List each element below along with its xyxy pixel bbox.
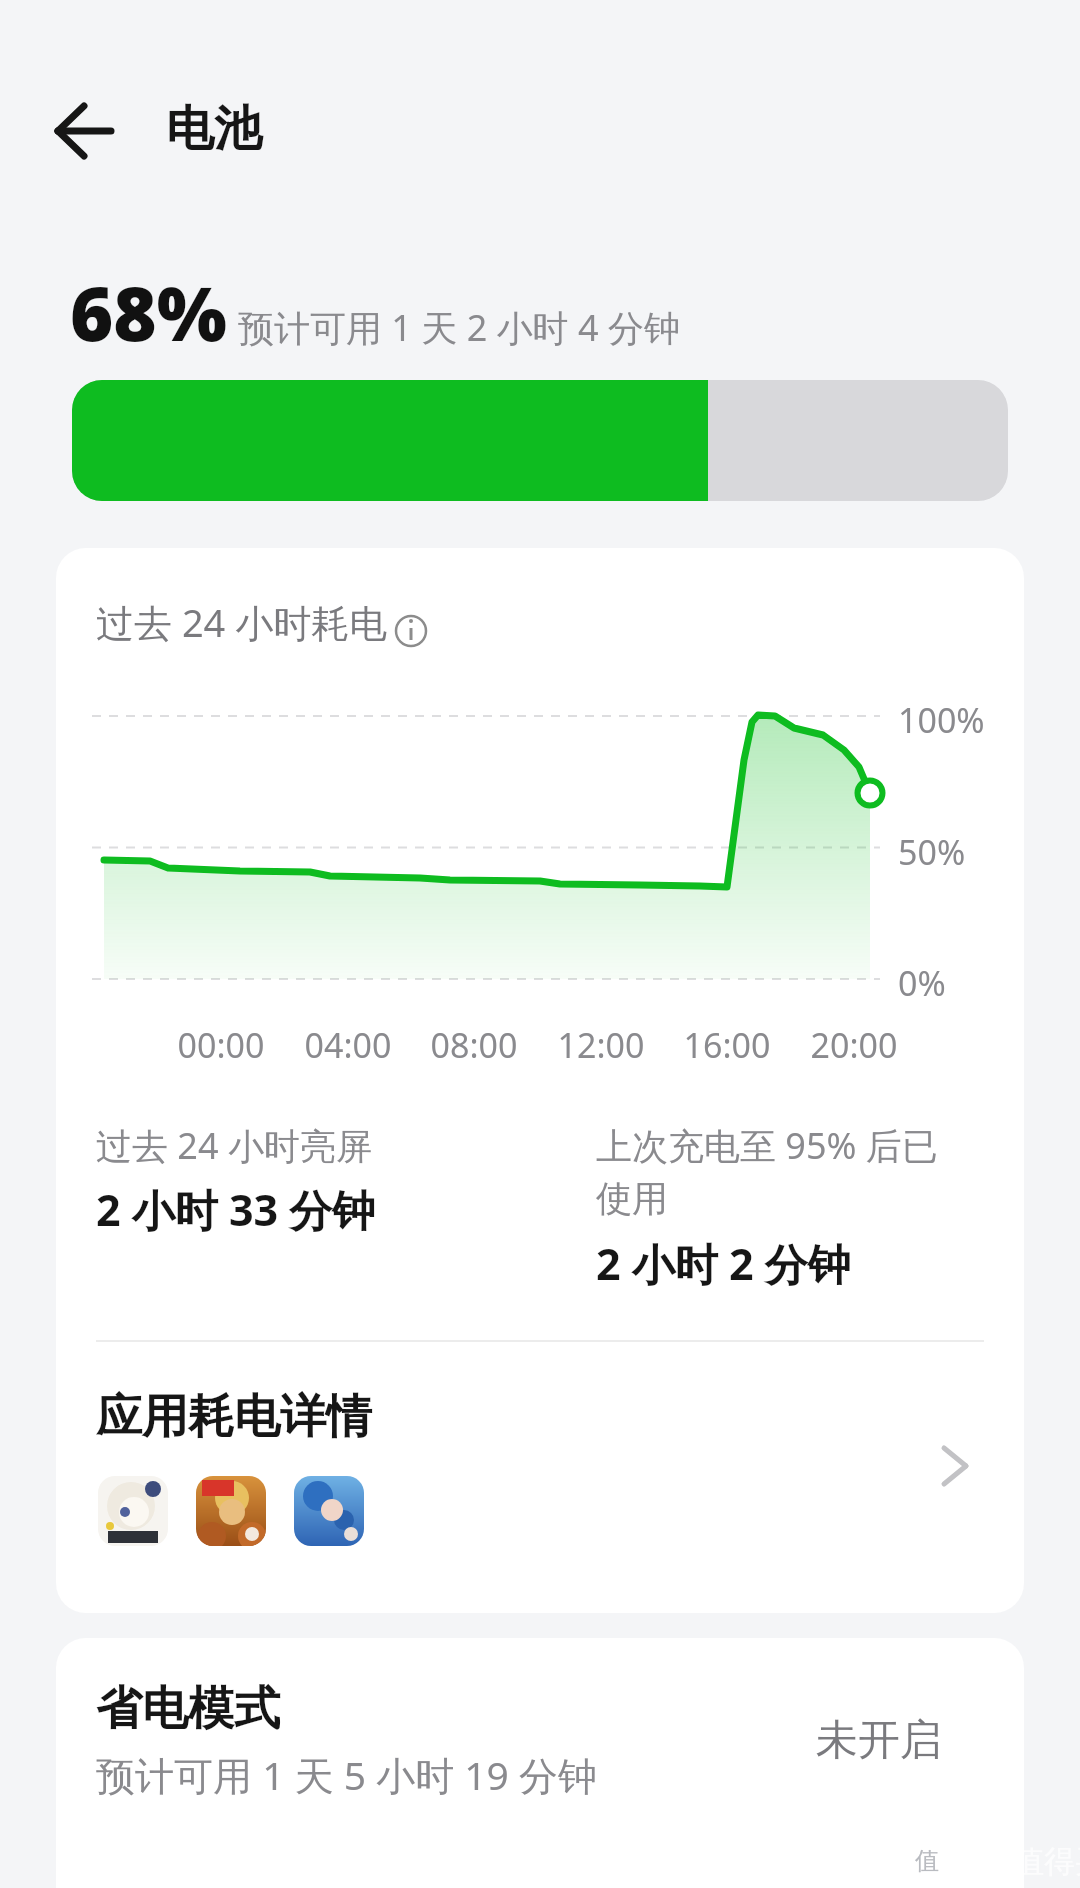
staticText: 应用耗电详情: [96, 1388, 372, 1446]
staticText: 值: [915, 1846, 939, 1876]
staticText: 12:00: [541, 1022, 661, 1068]
staticText: 2 小时 2 分钟: [596, 1234, 851, 1293]
staticText: 68%: [70, 262, 227, 363]
staticText: 未开启: [816, 1714, 942, 1767]
button[interactable]: [98, 1476, 168, 1546]
button[interactable]: [56, 1638, 1024, 1888]
staticText: 上次充电至 95% 后已: [596, 1121, 938, 1170]
staticText: 50%: [898, 829, 966, 875]
button[interactable]: [196, 1476, 266, 1546]
staticText: 20:00: [794, 1022, 914, 1068]
staticText: 预计可用 1 天 2 小时 4 分钟: [238, 303, 680, 352]
staticText: 100%: [898, 697, 985, 743]
staticText: 过去 24 小时亮屏: [96, 1121, 372, 1170]
staticText: 省电模式: [96, 1680, 280, 1738]
staticText: 2 小时 33 分钟: [96, 1180, 376, 1239]
staticText: 08:00: [414, 1022, 534, 1068]
staticText: 预计可用 1 天 5 小时 19 分钟: [96, 1748, 598, 1801]
staticText: 0%: [898, 960, 946, 1006]
button[interactable]: [44, 96, 124, 166]
button[interactable]: [294, 1476, 364, 1546]
staticText: 什么值得买: [951, 1842, 1080, 1881]
staticText: 过去 24 小时耗电: [96, 596, 388, 648]
staticText: 04:00: [288, 1022, 408, 1068]
button[interactable]: [76, 1380, 1004, 1572]
staticText: 使用: [596, 1176, 668, 1221]
staticText: 电池: [166, 99, 262, 159]
staticText: 16:00: [667, 1022, 787, 1068]
staticText: 00:00: [161, 1022, 281, 1068]
